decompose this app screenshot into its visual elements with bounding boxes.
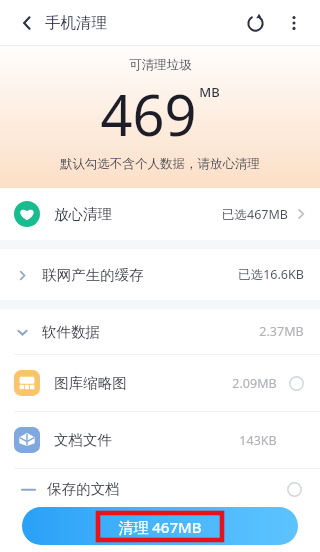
staticText: 文档文件 xyxy=(54,431,112,449)
button[interactable]: Back xyxy=(14,10,40,36)
button[interactable]: 联网产生的缓存 xyxy=(0,249,320,300)
staticText: 已选467MB xyxy=(222,206,288,223)
staticText: 可清理垃圾 xyxy=(129,57,192,73)
button[interactable]: Select 图库缩略图 xyxy=(286,373,306,393)
staticText: 2.09MB xyxy=(232,375,277,392)
staticText: 清理 467MB xyxy=(118,517,202,537)
button[interactable]: 文档文件 xyxy=(0,412,320,468)
staticText: 143KB xyxy=(239,432,277,449)
button[interactable]: 软件数据 xyxy=(0,309,320,354)
staticText: 保存的文档 xyxy=(47,480,120,498)
staticText: 软件数据 xyxy=(42,323,100,341)
button[interactable]: 清理 467MB xyxy=(22,507,298,545)
staticText: 手机清理 xyxy=(45,13,107,33)
staticText: 469 xyxy=(100,76,197,152)
staticText: 联网产生的缓存 xyxy=(42,266,144,284)
staticText: 图库缩略图 xyxy=(54,374,127,392)
staticText: 2.37MB xyxy=(259,323,304,340)
button[interactable]: Refresh xyxy=(240,8,270,38)
staticText: 放心清理 xyxy=(54,205,112,223)
button[interactable]: 图库缩略图 xyxy=(0,355,320,411)
button[interactable]: 保存的文档 xyxy=(0,469,320,509)
button[interactable]: More options xyxy=(280,9,308,37)
staticText: 已选16.6KB xyxy=(238,266,304,283)
button[interactable]: 放心清理 xyxy=(0,188,320,240)
staticText: MB xyxy=(199,83,220,101)
staticText: 默认勾选不含个人数据，请放心清理 xyxy=(60,156,260,172)
